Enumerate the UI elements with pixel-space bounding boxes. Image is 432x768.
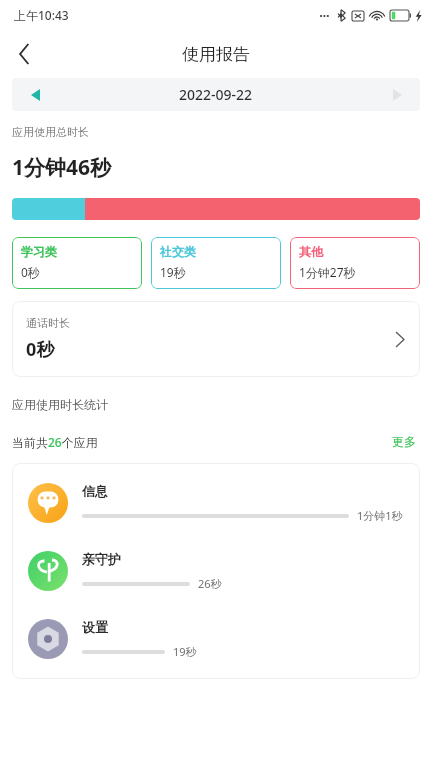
button[interactable]: 设置 <box>12 605 420 673</box>
button[interactable]: 社交类 <box>151 237 281 289</box>
staticText: 社交类 <box>160 244 196 259</box>
button[interactable]: 通话时长 <box>12 301 420 377</box>
staticText: 通话时长 <box>26 316 70 330</box>
staticText: 1分钟27秒 <box>299 264 356 280</box>
staticText: 信息 <box>82 483 108 499</box>
staticText: 更多 <box>392 434 416 449</box>
staticText: 亲守护 <box>82 551 121 567</box>
staticText: 1分钟1秒 <box>357 508 403 523</box>
button[interactable]: 其他 <box>290 237 420 289</box>
button[interactable]: Previous day <box>12 78 58 111</box>
button[interactable]: 更多 <box>388 430 420 453</box>
staticText: 2022-09-22 <box>179 85 253 104</box>
staticText: 应用使用总时长 <box>12 125 89 139</box>
staticText: 0秒 <box>21 264 40 280</box>
staticText: 学习类 <box>21 244 57 259</box>
staticText: 1分钟46秒 <box>12 153 112 182</box>
button[interactable]: 学习类 <box>12 237 142 289</box>
staticText: 0秒 <box>26 337 55 362</box>
button[interactable]: 亲守护 <box>12 537 420 605</box>
button[interactable]: Back <box>0 30 48 78</box>
staticText: 上午10:43 <box>14 7 69 23</box>
button[interactable]: 信息 <box>12 469 420 537</box>
staticText: 26秒 <box>198 576 222 591</box>
staticText: 19秒 <box>173 644 197 659</box>
button[interactable]: Next day <box>374 78 420 111</box>
staticText: 19秒 <box>160 264 186 280</box>
staticText: 设置 <box>82 619 108 635</box>
staticText: 使用报告 <box>182 44 250 65</box>
staticText: 当前共26个应用 <box>12 434 98 450</box>
staticText: 应用使用时长统计 <box>12 397 108 412</box>
staticText: 其他 <box>299 244 323 259</box>
